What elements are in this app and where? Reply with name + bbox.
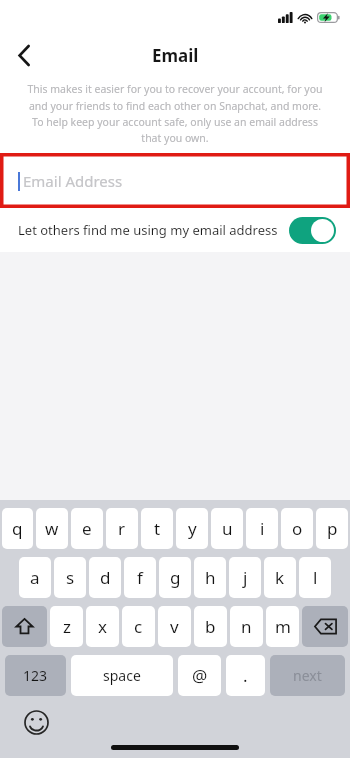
staticText: Email Address <box>23 171 123 191</box>
button[interactable]: v <box>158 606 191 647</box>
button[interactable]: Shift <box>2 606 47 647</box>
staticText: This makes it easier for you to recover … <box>26 82 324 145</box>
button[interactable]: w <box>36 508 68 549</box>
staticText: d <box>100 566 111 589</box>
button[interactable]: 123 <box>5 655 66 696</box>
staticText: x <box>98 615 107 638</box>
staticText: n <box>241 615 252 638</box>
staticText: m <box>275 615 291 638</box>
staticText: . <box>243 664 248 687</box>
button[interactable]: c <box>122 606 155 647</box>
button[interactable]: k <box>264 557 296 598</box>
button[interactable]: d <box>89 557 121 598</box>
staticText: p <box>327 517 338 540</box>
button[interactable]: m <box>266 606 299 647</box>
staticText: Email <box>152 44 199 67</box>
button[interactable]: h <box>194 557 226 598</box>
staticText: a <box>30 566 40 589</box>
staticText: o <box>292 517 303 540</box>
staticText: 123 <box>23 666 48 685</box>
staticText: c <box>134 615 143 638</box>
button[interactable]: z <box>50 606 83 647</box>
button[interactable]: p <box>316 508 348 549</box>
staticText: g <box>170 566 181 589</box>
staticText: y <box>188 517 197 540</box>
button[interactable]: j <box>229 557 261 598</box>
button[interactable]: g <box>159 557 191 598</box>
staticText: next <box>293 666 322 685</box>
staticText: s <box>66 566 75 589</box>
staticText: r <box>118 517 126 540</box>
staticText: w <box>45 517 59 540</box>
button[interactable]: t <box>141 508 173 549</box>
staticText: Let others find me using my email addres… <box>18 221 278 239</box>
button[interactable]: n <box>230 606 263 647</box>
staticText: h <box>205 566 216 589</box>
staticText: z <box>63 615 71 638</box>
staticText: f <box>137 566 143 589</box>
staticText: u <box>222 517 233 540</box>
button[interactable]: Backspace <box>302 606 348 647</box>
staticText: j <box>243 566 248 589</box>
button[interactable]: o <box>281 508 313 549</box>
button[interactable]: @ <box>178 655 221 696</box>
button[interactable]: q <box>2 508 33 549</box>
staticText: space <box>103 666 141 685</box>
button[interactable]: next <box>270 655 345 696</box>
button[interactable]: f <box>124 557 156 598</box>
button[interactable]: e <box>71 508 103 549</box>
button[interactable]: b <box>194 606 227 647</box>
button[interactable]: l <box>299 557 331 598</box>
button[interactable]: Let others find me using my email addres… <box>0 208 350 252</box>
staticText: e <box>82 517 92 540</box>
staticText: i <box>260 517 265 540</box>
button[interactable]: space <box>71 655 173 696</box>
button[interactable]: Email Address <box>0 156 350 205</box>
button[interactable]: r <box>106 508 138 549</box>
button[interactable]: Back <box>6 37 42 73</box>
staticText: t <box>154 517 161 540</box>
button[interactable]: a <box>19 557 51 598</box>
staticText: v <box>170 615 179 638</box>
button[interactable]: . <box>226 655 265 696</box>
button[interactable]: Emoji <box>22 708 50 736</box>
button[interactable]: y <box>176 508 208 549</box>
staticText: q <box>12 517 23 540</box>
button[interactable]: i <box>246 508 278 549</box>
button[interactable]: u <box>211 508 243 549</box>
staticText: k <box>275 566 285 589</box>
staticText: @ <box>192 664 208 687</box>
button[interactable]: s <box>54 557 86 598</box>
staticText: b <box>205 615 216 638</box>
staticText: l <box>313 566 318 589</box>
button[interactable]: x <box>86 606 119 647</box>
